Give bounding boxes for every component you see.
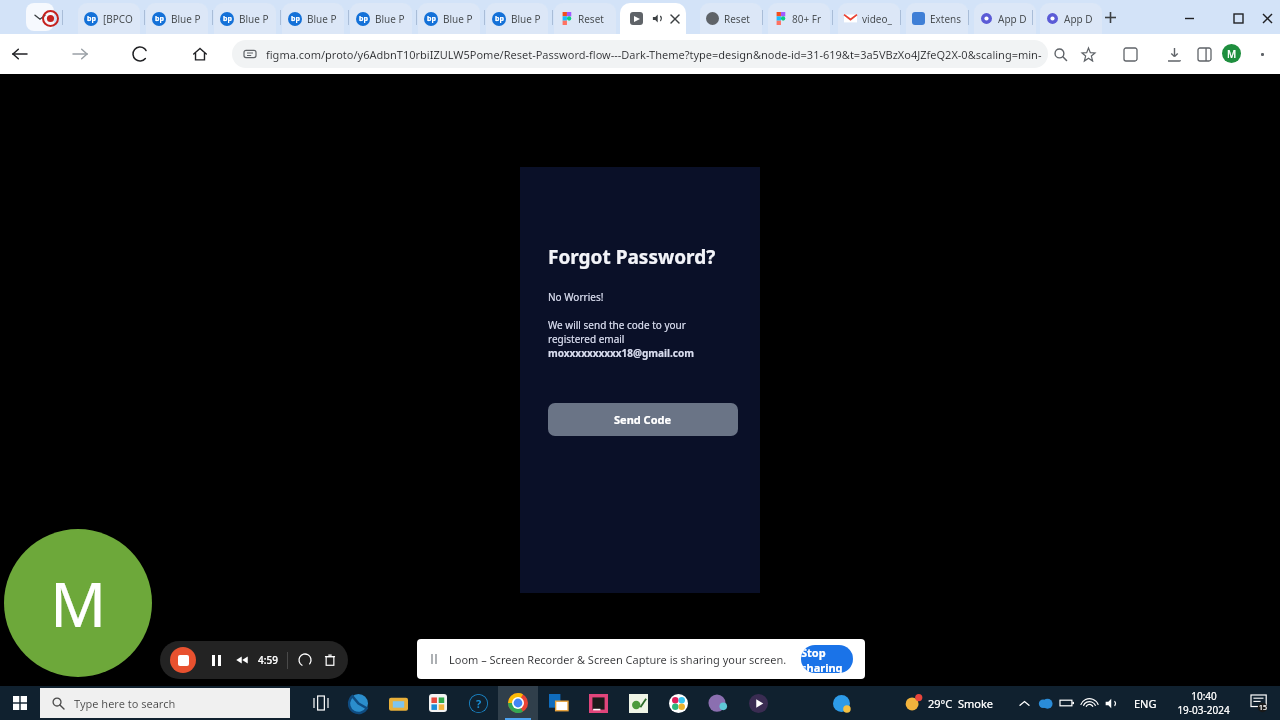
staticText: figma.com/proto/y6AdbnT10rbiIZULW5Pome/R… (266, 47, 1048, 62)
button[interactable]: Extensions (1120, 44, 1140, 64)
button[interactable]: Pinwheel (698, 686, 738, 720)
staticText: Blue P (171, 12, 201, 26)
button[interactable]: Notes (618, 686, 658, 720)
button[interactable]: bp (418, 3, 480, 34)
button[interactable]: Show hidden icons (1014, 693, 1034, 713)
staticText: 4:59 (258, 653, 278, 667)
staticText: Reset (724, 12, 750, 26)
button[interactable]: Media Player (738, 686, 778, 720)
button[interactable]: bp (282, 3, 344, 34)
button[interactable]: Stop recording (170, 647, 196, 673)
button[interactable]: bp (214, 3, 276, 34)
button[interactable]: Side panel (1194, 44, 1214, 64)
button[interactable]: Rewind (234, 652, 250, 668)
button[interactable]: Network (1078, 692, 1100, 714)
button[interactable]: Start (0, 686, 40, 720)
staticText: No Worries! (548, 290, 604, 304)
staticText: moxxxxxxxxxx18@gmail.com (548, 346, 695, 360)
button[interactable]: Volume (1100, 692, 1122, 714)
button[interactable]: Outlook (538, 686, 578, 720)
button[interactable]: Close (1254, 5, 1280, 31)
button[interactable]: Battery (1056, 692, 1078, 714)
staticText: Stop sharing (801, 645, 853, 673)
staticText: bp (87, 14, 96, 24)
staticText: bp (359, 14, 368, 24)
button[interactable]: Google Chrome (498, 686, 538, 720)
staticText: Blue P (375, 12, 405, 26)
button[interactable]: Help (458, 686, 498, 720)
button[interactable]: Forward (68, 42, 92, 66)
staticText: M (50, 561, 107, 645)
button[interactable]: 80+ Fr (768, 3, 830, 34)
button[interactable]: Back (8, 42, 32, 66)
button[interactable]: Microsoft Store (418, 686, 458, 720)
button[interactable]: Microsoft Edge (338, 686, 378, 720)
staticText: Forgot Password? (548, 244, 716, 270)
button[interactable]: Maximize (1225, 5, 1251, 31)
button[interactable]: Profile (1222, 44, 1241, 63)
staticText: bp (223, 14, 232, 24)
button[interactable]: Reset (700, 3, 762, 34)
button[interactable]: Send Code (548, 403, 738, 436)
button[interactable]: 29°C Smoke (898, 694, 1000, 712)
button[interactable]: Notifications (1244, 688, 1274, 718)
button[interactable]: Restart (297, 652, 313, 668)
button[interactable]: Zoom (1050, 44, 1070, 64)
button[interactable]: New tab (1100, 7, 1120, 27)
button[interactable]: Extens (906, 3, 968, 34)
staticText: 29°C Smoke (928, 696, 994, 711)
staticText: Blue P (443, 12, 473, 26)
staticText: Reset (578, 12, 604, 26)
button[interactable]: IntelliJ IDEA (578, 686, 618, 720)
button[interactable]: Home (188, 42, 212, 66)
staticText: M (1227, 47, 1237, 61)
button[interactable]: Pause (208, 652, 224, 668)
button[interactable]: Slack (658, 686, 698, 720)
button[interactable]: Reload (128, 42, 152, 66)
button[interactable]: App D (1040, 3, 1102, 34)
button[interactable]: 10:40 (1173, 689, 1234, 717)
button[interactable]: figma.com/proto/y6AdbnT10rbiIZULW5Pome/R… (232, 40, 1048, 68)
staticText: [BPCO (103, 12, 133, 26)
button[interactable]: Type here to search (40, 688, 290, 718)
button[interactable]: Search tabs (26, 3, 54, 31)
button[interactable]: ENG (1130, 696, 1161, 711)
staticText: 15 (1259, 703, 1268, 713)
button[interactable]: OneDrive (1034, 692, 1056, 714)
staticText: 19-03-2024 (1177, 703, 1230, 717)
staticText: ENG (1134, 696, 1157, 711)
button[interactable]: Downloads (1164, 44, 1184, 64)
staticText: App D (1064, 12, 1093, 26)
button[interactable]: Recording tab (40, 8, 60, 28)
button[interactable]: Stop sharing (801, 645, 853, 673)
button[interactable] (620, 3, 686, 34)
button[interactable]: Help notification (824, 686, 858, 720)
button[interactable]: Task view (304, 686, 338, 720)
staticText: bp (155, 14, 164, 24)
button[interactable]: Camera bubble (4, 529, 152, 677)
staticText: Extens (930, 12, 962, 26)
staticText: Blue P (511, 12, 541, 26)
button[interactable]: App D (974, 3, 1036, 34)
staticText: bp (495, 14, 504, 24)
button[interactable]: bp (486, 3, 548, 34)
staticText: Blue P (239, 12, 269, 26)
staticText: bp (427, 14, 436, 24)
button[interactable]: Reset (554, 3, 616, 34)
staticText: App D (998, 12, 1027, 26)
button[interactable]: Minimize (1176, 5, 1202, 31)
staticText: ? (476, 696, 482, 711)
button[interactable]: File Explorer (378, 686, 418, 720)
staticText: We will send the code to your registered… (548, 318, 686, 346)
button[interactable]: Chrome menu (1254, 46, 1270, 62)
button[interactable]: Delete (322, 652, 338, 668)
button[interactable]: bp (146, 3, 208, 34)
button[interactable]: bp (350, 3, 412, 34)
button[interactable]: Bookmark (1078, 44, 1098, 64)
staticText: 10:40 (1191, 689, 1217, 703)
staticText: Type here to search (74, 696, 176, 711)
staticText: Send Code (614, 412, 672, 427)
button[interactable]: bp (78, 3, 140, 34)
button[interactable]: video_ (838, 3, 900, 34)
staticText: Loom – Screen Recorder & Screen Capture … (449, 652, 787, 667)
